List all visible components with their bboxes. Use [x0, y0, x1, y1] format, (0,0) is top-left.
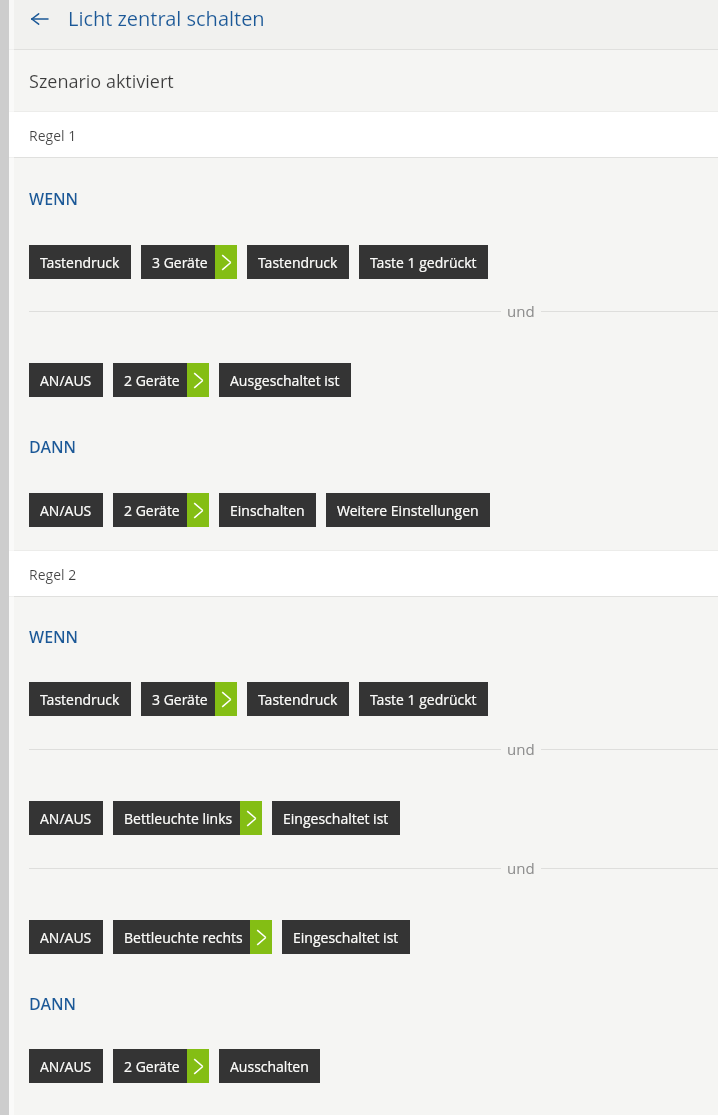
staticText: Einschalten	[230, 501, 305, 520]
staticText: 3 Geräte	[152, 690, 208, 709]
button[interactable]: Eingeschaltet ist	[272, 801, 400, 835]
staticText: AN/AUS	[40, 809, 92, 828]
button[interactable]: Eingeschaltet ist	[282, 920, 410, 954]
staticText: Bettleuchte links	[124, 809, 233, 828]
button[interactable]: 2 Geräte	[113, 363, 209, 397]
button[interactable]: Taste 1 gedrückt	[359, 682, 488, 716]
staticText: und	[507, 301, 535, 321]
staticText: und	[507, 739, 535, 759]
button[interactable]: Ausgeschaltet ist	[219, 363, 351, 397]
staticText: Tastendruck	[258, 690, 338, 709]
button[interactable]: Tastendruck	[29, 245, 131, 279]
button[interactable]: Ausschalten	[219, 1049, 320, 1083]
button[interactable]: Taste 1 gedrückt	[359, 245, 488, 279]
button[interactable]: Einschalten	[219, 493, 316, 527]
staticText: Ausgeschaltet ist	[230, 371, 340, 390]
button[interactable]: Tastendruck	[247, 682, 349, 716]
button[interactable]: AN/AUS	[29, 493, 103, 527]
button[interactable]: 3 Geräte	[141, 245, 237, 279]
button[interactable]: Back	[21, 1, 57, 37]
staticText: AN/AUS	[40, 928, 92, 947]
button[interactable]: 3 Geräte	[141, 682, 237, 716]
button[interactable]: 2 Geräte	[113, 1049, 209, 1083]
staticText: und	[507, 858, 535, 878]
button[interactable]: Bettleuchte links	[113, 801, 262, 835]
staticText: AN/AUS	[40, 1057, 92, 1076]
staticText: DANN	[29, 993, 77, 1015]
button[interactable]: Weitere Einstellungen	[326, 493, 490, 527]
button[interactable]: Regel 2	[0, 551, 718, 596]
button[interactable]: AN/AUS	[29, 363, 103, 397]
button[interactable]: AN/AUS	[29, 1049, 103, 1083]
staticText: Bettleuchte rechts	[124, 928, 243, 947]
staticText: Weitere Einstellungen	[337, 501, 479, 520]
staticText: Szenario aktiviert	[29, 69, 174, 94]
staticText: Tastendruck	[40, 253, 120, 272]
button[interactable]: AN/AUS	[29, 920, 103, 954]
button[interactable]: 2 Geräte	[113, 493, 209, 527]
staticText: Regel 1	[29, 126, 77, 145]
staticText: Regel 2	[29, 565, 77, 584]
staticText: Tastendruck	[258, 253, 338, 272]
button[interactable]: Tastendruck	[247, 245, 349, 279]
staticText: Eingeschaltet ist	[283, 809, 389, 828]
staticText: AN/AUS	[40, 501, 92, 520]
staticText: Taste 1 gedrückt	[370, 690, 477, 709]
staticText: DANN	[29, 436, 77, 458]
staticText: 3 Geräte	[152, 253, 208, 272]
staticText: 2 Geräte	[124, 371, 180, 390]
staticText: WENN	[29, 188, 79, 210]
staticText: Eingeschaltet ist	[293, 928, 399, 947]
button[interactable]: Bettleuchte rechts	[113, 920, 272, 954]
staticText: Ausschalten	[230, 1057, 309, 1076]
button[interactable]: AN/AUS	[29, 801, 103, 835]
staticText: 2 Geräte	[124, 501, 180, 520]
staticText: WENN	[29, 626, 79, 648]
staticText: AN/AUS	[40, 371, 92, 390]
button[interactable]: Regel 1	[0, 112, 718, 157]
staticText: Taste 1 gedrückt	[370, 253, 477, 272]
staticText: 2 Geräte	[124, 1057, 180, 1076]
staticText: Tastendruck	[40, 690, 120, 709]
button[interactable]: Tastendruck	[29, 682, 131, 716]
staticText: Licht zentral schalten	[68, 5, 265, 32]
